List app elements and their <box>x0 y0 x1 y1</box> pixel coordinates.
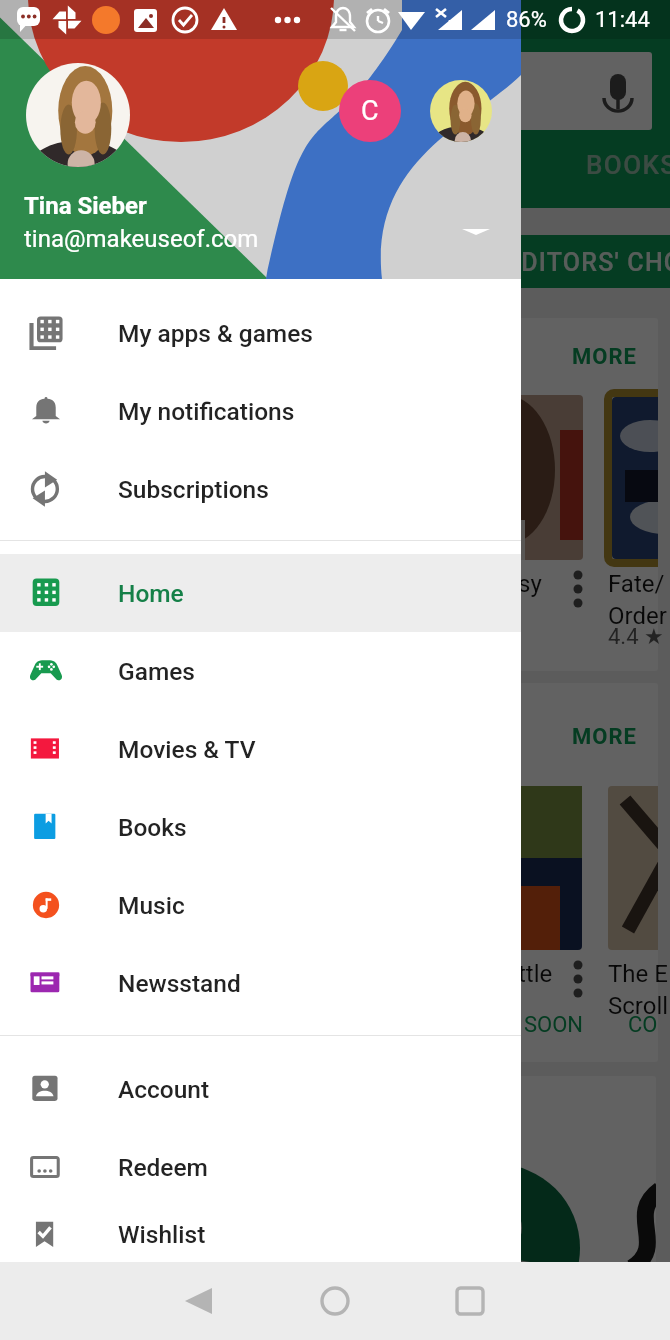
staticText: EDITORS' CHOICE <box>506 248 670 277</box>
staticText: MORE <box>572 344 637 370</box>
staticText: MORE <box>572 724 637 750</box>
button[interactable]: Music <box>0 866 521 944</box>
staticText: sy <box>518 570 542 598</box>
staticText: Tina Sieber <box>24 192 147 220</box>
staticText: SOON <box>524 1012 584 1038</box>
staticText: Wishlist <box>118 1220 206 1249</box>
button[interactable]: Switch account <box>430 80 492 142</box>
button[interactable]: Account C <box>339 80 401 142</box>
button[interactable]: Subscriptions <box>0 450 521 528</box>
staticText: C <box>361 95 379 127</box>
staticText: My notifications <box>118 397 295 426</box>
staticText: Redeem <box>118 1153 208 1182</box>
button[interactable]: Redeem <box>0 1128 521 1206</box>
staticText: Books <box>118 813 187 842</box>
button[interactable]: Books <box>0 788 521 866</box>
staticText: ttle <box>518 960 553 988</box>
staticText: Newsstand <box>118 969 241 998</box>
staticText: CO <box>628 1012 658 1038</box>
button[interactable]: Games <box>0 632 521 710</box>
button[interactable]: Movies & TV <box>0 710 521 788</box>
staticText: Subscriptions <box>118 475 269 504</box>
staticText: Music <box>118 891 185 920</box>
staticText: The E Scroll <box>608 960 669 1019</box>
button[interactable]: Home <box>0 554 521 632</box>
staticText: 86% <box>506 7 547 33</box>
button[interactable]: Expand account list <box>459 215 493 249</box>
button[interactable]: Wishlist <box>0 1206 521 1262</box>
staticText: Movies & TV <box>118 735 256 764</box>
button[interactable]: Account <box>0 1050 521 1128</box>
staticText: 4.4 ★ <box>608 624 664 650</box>
staticText: Games <box>118 657 195 686</box>
staticText: BOOKS <box>586 150 670 180</box>
button[interactable]: My notifications <box>0 372 521 450</box>
staticText: My apps & games <box>118 319 313 348</box>
staticText: R <box>448 18 455 31</box>
button[interactable]: Profile photo <box>26 63 130 167</box>
staticText: Home <box>118 579 184 608</box>
staticText: Fate/ Order <box>608 570 667 629</box>
staticText: tina@makeuseof.com <box>24 225 259 253</box>
staticText: 11:44 <box>595 7 650 33</box>
button[interactable]: My apps & games <box>0 294 521 372</box>
staticText: Account <box>118 1075 210 1104</box>
button[interactable]: Newsstand <box>0 944 521 1022</box>
